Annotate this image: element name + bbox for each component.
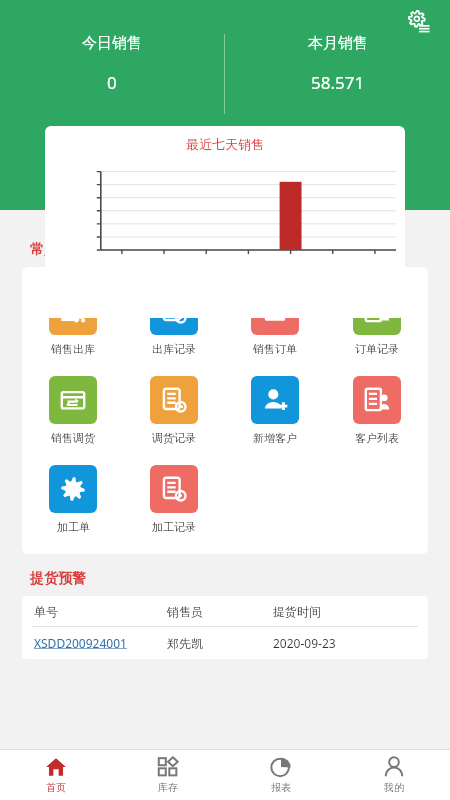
staticText: 加工记录 <box>152 520 196 534</box>
staticText: 首页 <box>46 781 66 794</box>
staticText: 2020-09-23 <box>273 635 416 651</box>
staticText: 单号 <box>34 604 167 619</box>
button[interactable]: XSDD200924001 <box>34 627 416 659</box>
button[interactable]: 销售订单 <box>247 283 303 360</box>
staticText: 最近七天销售 <box>186 136 264 152</box>
button[interactable]: 销售调货 <box>45 372 101 449</box>
staticText: 加工单 <box>57 520 90 534</box>
staticText: 郑先凯 <box>167 636 273 651</box>
staticText: 调货记录 <box>152 431 196 445</box>
staticText: 0 <box>107 71 117 94</box>
staticText: 58.571 <box>311 71 365 94</box>
button[interactable]: 调货记录 <box>146 372 202 449</box>
staticText: 提货时间 <box>273 604 416 619</box>
staticText: 出库记录 <box>152 342 196 356</box>
staticText: 客户列表 <box>355 431 399 445</box>
button[interactable]: 加工单 <box>45 461 101 538</box>
staticText: 销售订单 <box>253 342 297 356</box>
button[interactable]: 首页 <box>0 750 112 800</box>
button[interactable]: 最近七天销售 <box>45 126 405 318</box>
staticText: 我的 <box>384 781 404 794</box>
button[interactable]: 销售出库 <box>45 283 101 360</box>
staticText: 新增客户 <box>253 431 297 445</box>
button[interactable]: 客户列表 <box>349 372 405 449</box>
staticText: 销售员 <box>167 604 273 619</box>
button[interactable]: 新增客户 <box>247 372 303 449</box>
staticText: 销售出库 <box>51 342 95 356</box>
button[interactable]: 报表 <box>224 750 337 800</box>
staticText: 常用功能 <box>30 241 86 259</box>
staticText: 销售调货 <box>51 431 95 445</box>
staticText: 今日销售 <box>82 34 142 53</box>
staticText: 库存 <box>158 781 178 794</box>
staticText: 本月销售 <box>308 34 368 53</box>
button[interactable]: 出库记录 <box>146 283 202 360</box>
button[interactable]: 订单记录 <box>349 283 405 360</box>
staticText: 订单记录 <box>355 342 399 356</box>
staticText: 提货预警 <box>30 570 86 588</box>
staticText: XSDD200924001 <box>34 635 167 651</box>
button[interactable]: 我的 <box>337 750 450 800</box>
button[interactable]: 库存 <box>112 750 224 800</box>
button[interactable]: 加工记录 <box>146 461 202 538</box>
button[interactable]: Settings <box>402 4 436 38</box>
staticText: 报表 <box>271 781 291 794</box>
